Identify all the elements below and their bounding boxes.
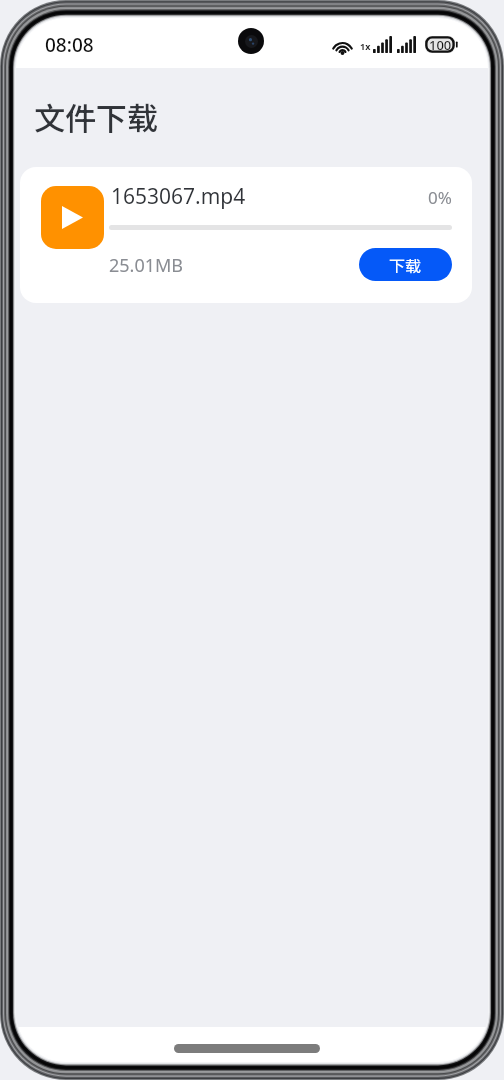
staticText: 1653067.mp4 — [111, 182, 246, 211]
staticText: 08:08 — [45, 32, 94, 58]
staticText: 下载 — [389, 253, 422, 276]
staticText: 0% — [428, 186, 452, 209]
staticText: 1x — [360, 40, 371, 52]
button[interactable]: 下载 — [359, 248, 452, 281]
other: Video file — [41, 186, 104, 249]
staticText: 100 — [429, 36, 452, 53]
staticText: 25.01MB — [109, 253, 184, 278]
button[interactable]: Video file — [20, 167, 472, 303]
staticText: 文件下载 — [34, 94, 158, 139]
